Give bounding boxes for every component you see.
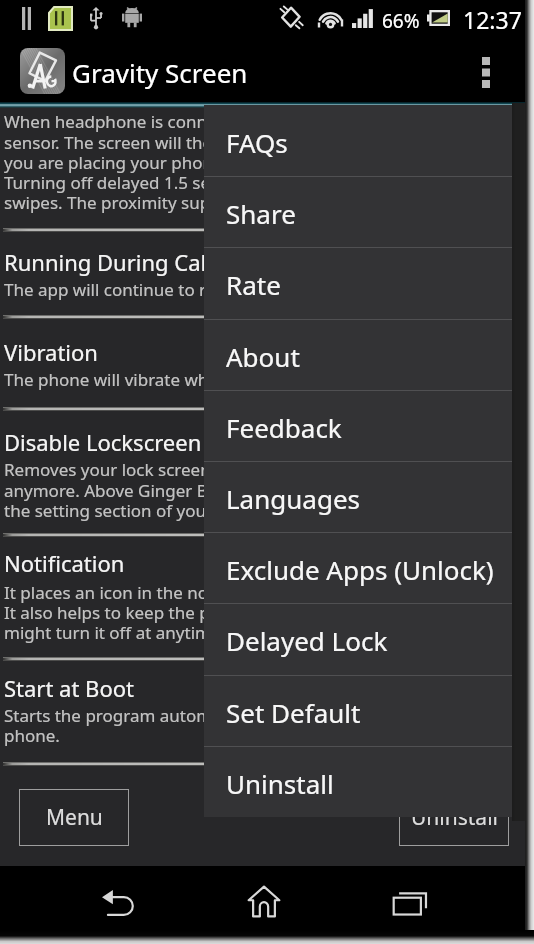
staticText: sensor. The screen will then stay on whe… xyxy=(4,131,334,154)
staticText: Gravity Screen xyxy=(72,55,248,90)
button[interactable]: Home xyxy=(226,866,302,936)
staticText: 66% xyxy=(382,8,420,34)
staticText: 12:37 xyxy=(463,4,522,35)
staticText: Uninstall xyxy=(411,803,498,832)
staticText: anymore. Above Ginger Bread you have to … xyxy=(4,479,367,502)
button[interactable]: Back xyxy=(80,874,156,936)
staticText: It places an icon in the notification ba… xyxy=(4,581,312,604)
button[interactable]: Set Default xyxy=(204,675,514,746)
staticText: Delayed Lock xyxy=(226,623,388,658)
button[interactable]: About xyxy=(204,319,514,390)
staticText: swipes. The proximity support is needed. xyxy=(4,191,331,214)
button[interactable]: FAQs xyxy=(204,105,514,176)
staticText: Starts the program automatically when yo… xyxy=(4,704,350,727)
staticText: might turn it off at anytime. xyxy=(4,621,226,644)
button[interactable]: More options xyxy=(457,38,514,108)
button[interactable]: Uninstall xyxy=(399,789,509,846)
staticText: Share xyxy=(226,196,296,231)
staticText: The phone will vibrate when locked. xyxy=(4,368,290,391)
staticText: Languages xyxy=(226,481,361,516)
staticText: Turning off delayed 1.5 sec to avoid fal… xyxy=(4,171,329,194)
staticText: Uninstall xyxy=(226,766,334,801)
staticText: It also helps to keep the program alive.… xyxy=(4,601,349,624)
button[interactable]: Uninstall xyxy=(204,746,514,817)
staticText: Vibration xyxy=(4,337,98,367)
button[interactable]: Menu xyxy=(19,789,129,846)
staticText: Removes your lock screen so you do not h… xyxy=(4,458,367,481)
button[interactable]: Share xyxy=(204,176,514,247)
staticText: phone. xyxy=(4,724,60,747)
staticText: Exclude Apps (Unlock) xyxy=(226,552,494,587)
button[interactable]: Languages xyxy=(204,461,514,532)
staticText: Rate xyxy=(226,267,281,302)
staticText: The app will continue to run during call… xyxy=(4,278,329,301)
staticText: FAQs xyxy=(226,125,288,160)
staticText: About xyxy=(226,339,300,374)
staticText: you are placing your phone in the pocket… xyxy=(4,151,336,174)
staticText: Disable Lockscreen xyxy=(4,427,202,457)
staticText: Feedback xyxy=(226,410,342,445)
button[interactable]: Rate xyxy=(204,247,514,318)
staticText: Set Default xyxy=(226,695,361,730)
staticText: When headphone is connected, turn off th… xyxy=(4,110,352,133)
staticText: Start at Boot xyxy=(4,673,134,703)
staticText: Running During Call xyxy=(4,247,212,277)
button[interactable]: Recent apps xyxy=(372,869,448,936)
staticText: Menu xyxy=(46,803,103,832)
button[interactable]: Exclude Apps (Unlock) xyxy=(204,532,514,603)
button[interactable]: Feedback xyxy=(204,390,514,461)
staticText: the setting section of your phone. xyxy=(4,499,274,522)
button[interactable]: Delayed Lock xyxy=(204,603,514,674)
staticText: Notification xyxy=(4,548,125,578)
button[interactable]: Gravity Screen xyxy=(20,48,248,94)
